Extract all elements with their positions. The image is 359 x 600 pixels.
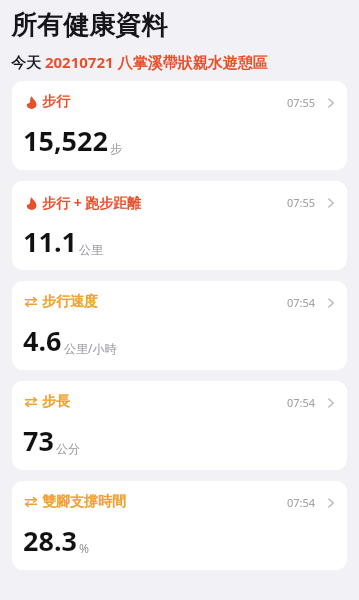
other: Open details [325,497,336,508]
staticText: 所有健康資料 [11,9,167,42]
staticText: 公里/小時 [64,340,117,356]
staticText: 今天 20210721 八掌溪帶狀親水遊憩區 [11,52,268,72]
staticText: 雙腳支撐時間 [42,493,126,511]
staticText: 11.1 [23,223,77,260]
staticText: 公分 [56,441,80,456]
other: Open details [325,297,336,308]
staticText: 07:55 [287,195,316,210]
staticText: 15,522 [23,122,108,159]
other: Open details [325,397,336,408]
staticText: 07:55 [287,95,316,110]
button[interactable]: 雙腳支撐時間 [12,481,347,570]
other: Open details [325,197,336,208]
staticText: 步行 + 跑步距離 [42,193,142,212]
staticText: 28.3 [23,522,77,559]
button[interactable]: 步行速度 [12,281,347,370]
other: Open details [325,97,336,108]
staticText: % [79,540,89,556]
staticText: 73 [23,422,54,459]
button[interactable]: 步長 [12,381,347,470]
staticText: 步行 [42,93,70,111]
staticText: 07:54 [287,395,316,410]
staticText: 07:54 [287,495,316,510]
staticText: 07:54 [287,295,316,310]
button[interactable]: 步行 [12,81,347,170]
staticText: 公里 [79,242,103,257]
button[interactable]: 步行 + 跑步距離 [12,181,347,270]
staticText: 步 [110,141,122,156]
staticText: 步長 [42,393,70,411]
staticText: 4.6 [23,322,62,359]
staticText: 步行速度 [42,293,98,311]
